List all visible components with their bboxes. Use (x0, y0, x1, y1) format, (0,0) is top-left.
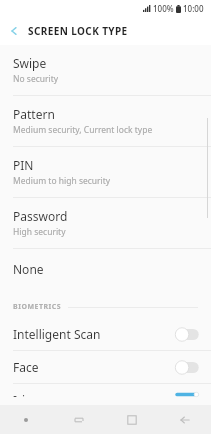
button[interactable]: Iris (0, 384, 211, 405)
staticText: Swipe (13, 55, 47, 71)
staticText: Iris (13, 392, 31, 397)
button[interactable]: Back (158, 405, 211, 434)
staticText: None (13, 261, 44, 277)
button[interactable]: Face (0, 351, 211, 383)
staticText: Pattern (13, 106, 55, 122)
staticText: 100% (153, 3, 174, 14)
staticText: 10:00 (183, 3, 204, 14)
button[interactable]: Intelligent Scan (0, 318, 211, 350)
button[interactable]: Back (0, 17, 28, 45)
staticText: Medium to high security (13, 175, 111, 187)
staticText: Password (13, 208, 68, 224)
button[interactable]: Password (0, 198, 211, 248)
button[interactable]: Home (105, 405, 158, 434)
button[interactable]: Swipe (0, 45, 211, 95)
staticText: Medium security, Current lock type (13, 124, 153, 136)
staticText: PIN (13, 157, 34, 173)
button[interactable]: PIN (0, 147, 211, 197)
button[interactable]: Pattern (0, 96, 211, 146)
button[interactable]: None (0, 249, 211, 289)
button[interactable]: Off (174, 360, 200, 375)
staticText: Face (13, 359, 39, 375)
button[interactable]: Menu (0, 405, 52, 434)
staticText: SCREEN LOCK TYPE (28, 24, 128, 38)
staticText: Intelligent Scan (13, 326, 101, 342)
button[interactable]: Recents (52, 405, 105, 434)
staticText: No security (13, 73, 59, 85)
button[interactable]: Off (174, 327, 200, 342)
staticText: High security (13, 226, 66, 238)
button[interactable]: On (174, 392, 200, 397)
staticText: BIOMETRICS (13, 302, 62, 312)
